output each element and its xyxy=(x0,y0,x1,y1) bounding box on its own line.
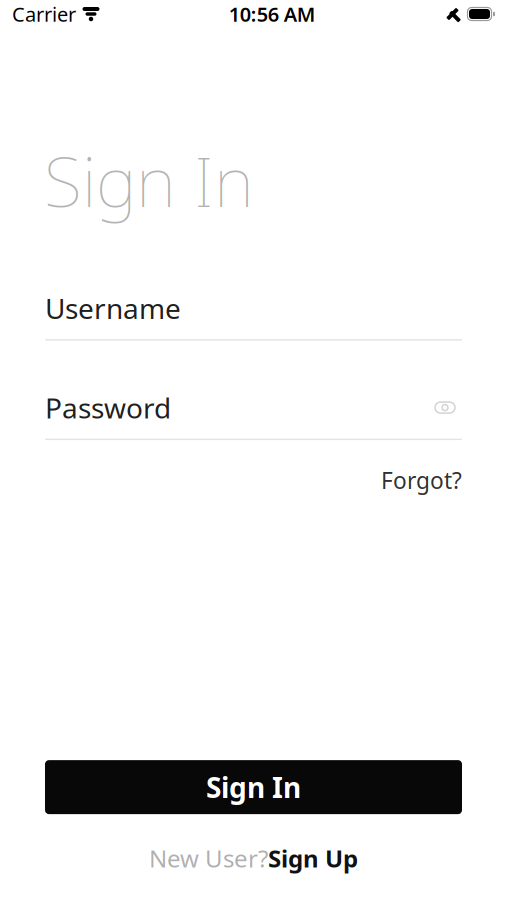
button[interactable]: Show password xyxy=(428,394,462,422)
staticText: 10:56 AM xyxy=(229,1,316,27)
button[interactable]: Sign In xyxy=(45,760,462,814)
button[interactable]: New User? xyxy=(149,836,358,880)
staticText: Sign In xyxy=(206,768,301,806)
staticText: Username xyxy=(45,289,181,327)
button[interactable]: Forgot? xyxy=(381,461,462,499)
staticText: Sign Up xyxy=(268,842,358,874)
staticText: Sign In xyxy=(44,134,254,226)
staticText: Forgot? xyxy=(381,465,462,495)
staticText: New User? xyxy=(149,842,268,874)
staticText: Password xyxy=(45,389,171,426)
staticText: Carrier xyxy=(12,1,76,27)
